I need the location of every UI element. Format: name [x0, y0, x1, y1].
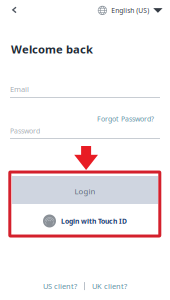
staticText: English (US)	[111, 6, 149, 15]
button[interactable]: Login with Touch ID	[12, 206, 158, 236]
staticText: Login	[74, 186, 95, 196]
staticText: Login with Touch ID	[61, 216, 127, 226]
button[interactable]: Login	[12, 176, 158, 204]
staticText: US client?	[43, 281, 77, 291]
button[interactable]: Back	[5, 1, 23, 19]
button[interactable]: English (US)	[98, 3, 163, 18]
staticText: Password	[10, 126, 40, 135]
button[interactable]: Forgot Password?	[97, 114, 154, 123]
staticText: UK client?	[92, 281, 127, 291]
staticText: Welcome back	[11, 41, 93, 57]
button[interactable]: UK client?	[89, 281, 130, 291]
button[interactable]: US client?	[40, 281, 80, 291]
staticText: Forgot Password?	[97, 114, 154, 123]
staticText: Email	[10, 84, 29, 94]
